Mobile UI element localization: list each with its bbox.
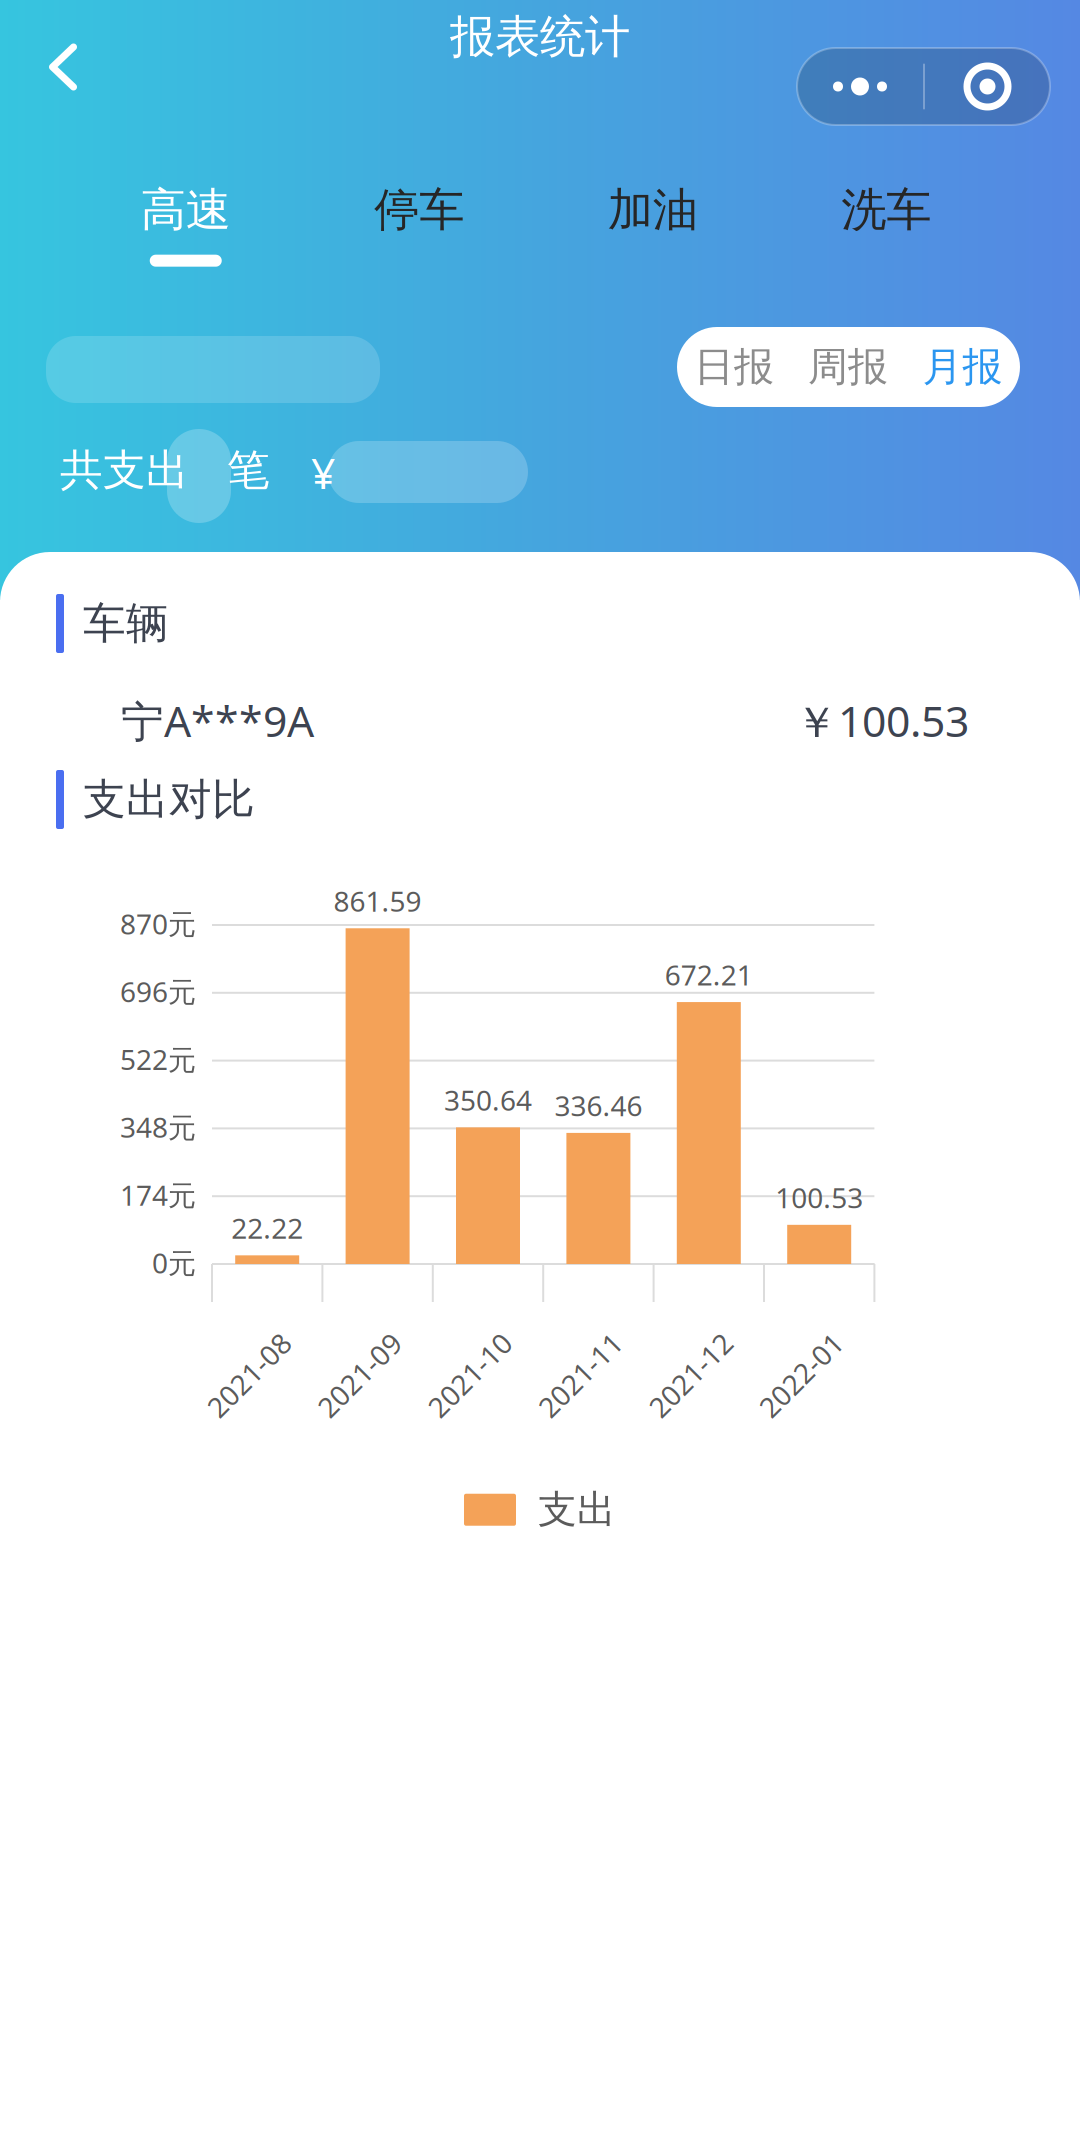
button[interactable]: 日报	[677, 327, 791, 407]
staticText: 861.59	[334, 882, 422, 919]
button[interactable]: 停车	[302, 182, 536, 267]
staticText: 336.46	[554, 1087, 642, 1124]
staticText: 加油	[608, 182, 698, 238]
staticText: 支出	[538, 1486, 616, 1533]
staticText: 348元	[120, 1108, 196, 1146]
staticText: 350.64	[444, 1081, 532, 1119]
staticText: 停车	[374, 182, 464, 238]
staticText: 日报	[694, 342, 774, 391]
staticText: 高速	[141, 182, 231, 238]
button[interactable]: 返回	[15, 19, 111, 115]
staticText: 2021-12	[638, 1356, 743, 1394]
button[interactable]: 周报	[791, 327, 905, 407]
staticText: 洗车	[841, 182, 931, 238]
staticText: 共支出	[60, 444, 189, 496]
staticText: 2021-08	[196, 1356, 301, 1394]
staticText: 2021-09	[307, 1356, 412, 1394]
staticText: 672.21	[665, 956, 753, 993]
staticText: 笔	[227, 444, 270, 496]
staticText: 522元	[120, 1041, 196, 1078]
staticText: ¥	[311, 444, 335, 501]
button[interactable]: 洗车	[769, 182, 1003, 267]
staticText: ￥100.53	[795, 692, 969, 749]
staticText: 宁A***9A	[121, 692, 314, 749]
staticText: 报表统计	[450, 9, 630, 65]
staticText: 696元	[120, 973, 196, 1010]
staticText: 22.22	[231, 1209, 303, 1246]
staticText: 周报	[808, 342, 888, 391]
staticText: 100.53	[775, 1179, 863, 1216]
staticText: 870元	[120, 905, 196, 942]
staticText: 174元	[120, 1176, 196, 1213]
button[interactable]: 高速	[69, 182, 302, 267]
staticText: 支出对比	[83, 773, 255, 826]
button[interactable]: 更多	[797, 48, 1050, 125]
staticText: 2021-11	[528, 1356, 633, 1394]
staticText: 0元	[152, 1244, 196, 1281]
button[interactable]: 月报	[905, 327, 1020, 407]
staticText: 车辆	[83, 597, 169, 650]
staticText: 2022-01	[748, 1356, 853, 1394]
button[interactable]: 加油	[536, 182, 769, 267]
staticText: 2021-10	[417, 1356, 522, 1394]
staticText: 月报	[922, 342, 1002, 391]
